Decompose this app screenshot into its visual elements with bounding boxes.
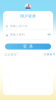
button[interactable]: 注册账号	[43, 53, 55, 56]
button[interactable]: 忘记密码?	[4, 53, 17, 56]
staticText: 请输入密码	[10, 33, 25, 36]
staticText: 登 录	[23, 44, 33, 49]
staticText: 请输入用户名	[10, 24, 28, 28]
button[interactable]: 登 录	[5, 43, 51, 49]
staticText: 用户登录	[20, 14, 36, 18]
staticText: 注册账号	[43, 53, 55, 56]
staticText: 忘记密码?	[4, 53, 17, 56]
